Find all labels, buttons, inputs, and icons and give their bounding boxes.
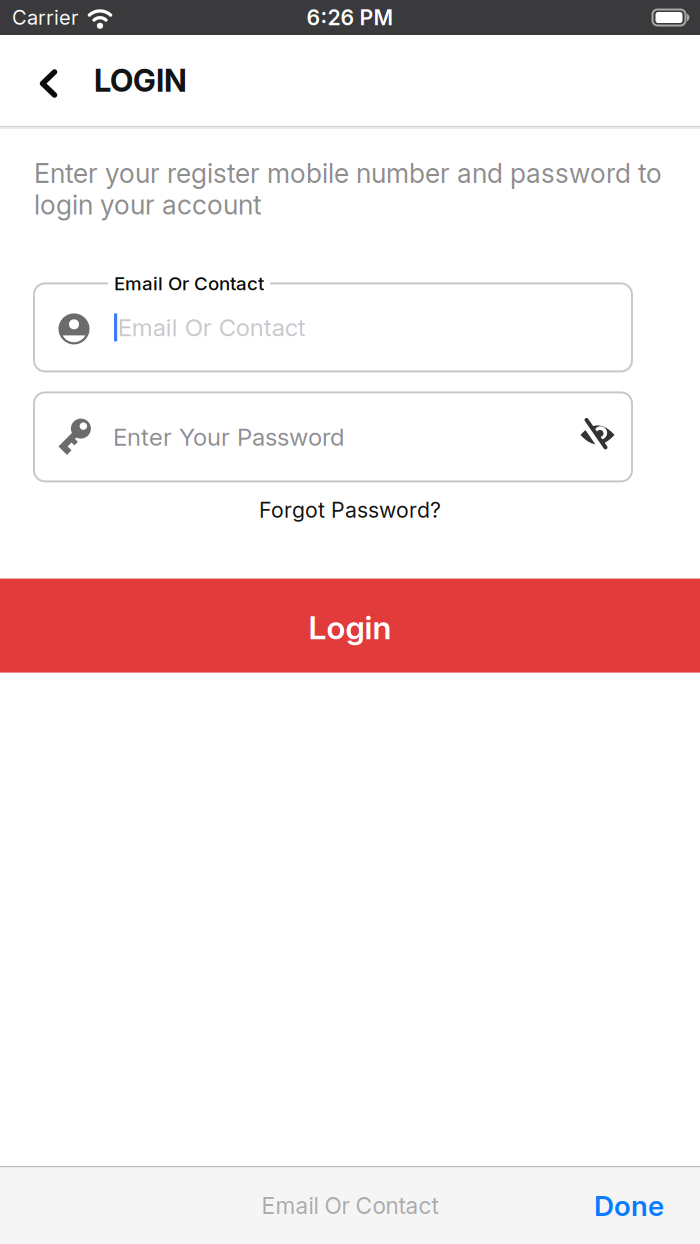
button[interactable]: Back bbox=[0, 66, 58, 95]
staticText: Done bbox=[594, 1189, 664, 1222]
button[interactable]: Done bbox=[594, 1189, 700, 1222]
button[interactable]: Login bbox=[0, 579, 700, 673]
button[interactable]: Show password bbox=[578, 419, 632, 455]
staticText: Forgot Password? bbox=[259, 497, 441, 523]
staticText: Email Or Contact bbox=[261, 1192, 438, 1219]
staticText: 6:26 PM bbox=[306, 5, 393, 30]
button[interactable]: Email Or Contact bbox=[34, 283, 632, 371]
staticText: Email Or Contact bbox=[114, 272, 264, 294]
button[interactable]: Enter Your Password bbox=[34, 392, 632, 481]
button[interactable]: Forgot Password? bbox=[259, 497, 441, 523]
staticText: Email Or Contact bbox=[118, 313, 306, 342]
staticText: Enter your register mobile number and pa… bbox=[34, 157, 662, 220]
staticText: LOGIN bbox=[94, 62, 187, 99]
staticText: Carrier bbox=[12, 6, 78, 29]
staticText: Enter Your Password bbox=[113, 423, 344, 451]
staticText: Login bbox=[308, 609, 391, 646]
